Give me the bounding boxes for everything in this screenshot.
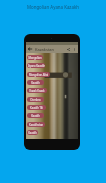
staticText: Kazak Kazak Kazakh xyxy=(27,89,47,93)
button[interactable]: Kazak Kazak Kazakh xyxy=(27,88,47,93)
staticText: Dombra Kazakh xyxy=(27,98,44,102)
button[interactable]: Kazakh Dombra xyxy=(27,80,44,85)
button[interactable]: Kazakhstan Music xyxy=(27,122,45,127)
staticText: Mongolian Altai Urkh xyxy=(27,73,50,77)
staticText: Kazakh xyxy=(28,131,37,135)
button[interactable]: Share xyxy=(65,45,72,53)
button[interactable]: Kazakh Dombra xyxy=(27,113,44,118)
button[interactable]: More options xyxy=(72,45,77,53)
staticText: Kazakh Tili Tuygan xyxy=(27,106,46,110)
staticText: Kazakhstan Music xyxy=(27,123,45,127)
staticText: Kazakh Dombra xyxy=(27,81,44,85)
staticText: Mongolian xyxy=(28,56,42,60)
button[interactable]: Ayana Kazakh xyxy=(27,63,45,68)
button[interactable]: Kazakh Tili Tuygan xyxy=(27,105,46,110)
button[interactable]: Kazakh xyxy=(27,130,38,135)
staticText: Kazakh Dombra xyxy=(27,114,44,118)
staticText: Kazakstan xyxy=(35,47,55,52)
button[interactable]: Dombra Kazakh xyxy=(27,97,44,102)
button[interactable]: Mongolian Altai Urkh xyxy=(27,72,50,77)
button[interactable]: Mongolian xyxy=(27,55,43,60)
staticText: Mongolian Ayana Kazakh xyxy=(27,4,79,10)
staticText: Ayana Kazakh xyxy=(28,64,45,68)
button[interactable]: Back xyxy=(26,45,33,53)
